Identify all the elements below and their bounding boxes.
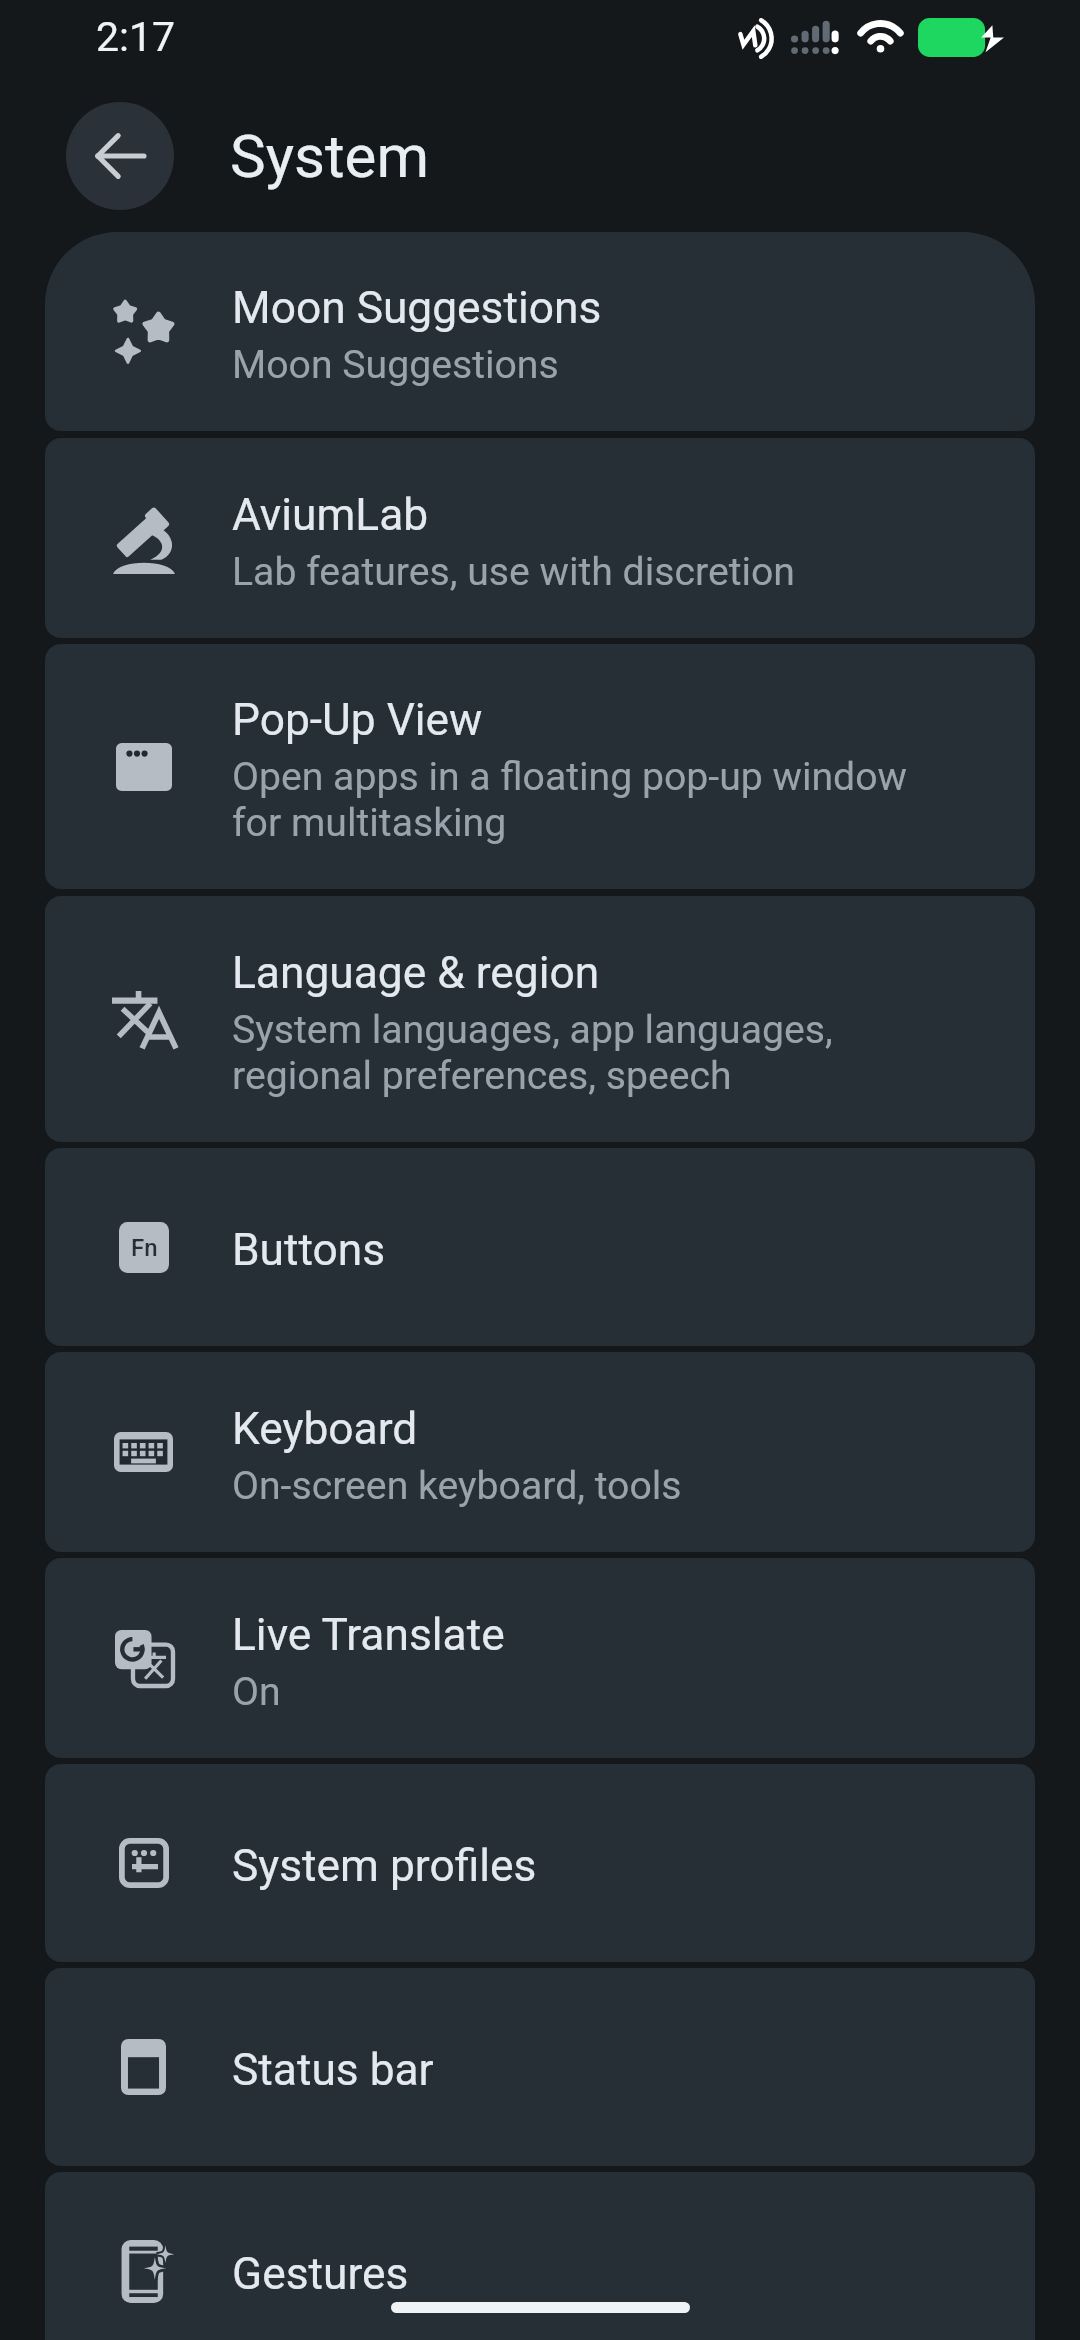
button[interactable]: Back [66, 102, 174, 210]
staticText: Gestures [232, 2248, 409, 2300]
button[interactable]: Status bar [45, 1968, 1035, 2166]
staticText: System languages, app languages, regiona… [232, 1006, 833, 1098]
staticText: AviumLab [232, 489, 429, 541]
staticText: System profiles [232, 1840, 537, 1892]
button[interactable]: AviumLab [45, 438, 1035, 638]
staticText: Lab features, use with discretion [232, 548, 796, 594]
button[interactable]: Keyboard [45, 1352, 1035, 1552]
staticText: Moon Suggestions [232, 282, 602, 334]
staticText: Status bar [232, 2044, 434, 2096]
button[interactable]: Gestures [45, 2172, 1035, 2340]
staticText: Fn [131, 1234, 158, 1262]
staticText: Open apps in a floating pop-up window fo… [232, 753, 907, 845]
button[interactable]: Live Translate [45, 1558, 1035, 1758]
button[interactable]: Pop-Up View [45, 644, 1035, 889]
staticText: System [230, 121, 430, 191]
button[interactable]: Moon Suggestions [45, 232, 1035, 431]
staticText: Live Translate [232, 1609, 505, 1661]
button[interactable]: Language & region [45, 896, 1035, 1142]
staticText: Keyboard [232, 1403, 418, 1455]
button[interactable]: Fn [45, 1148, 1035, 1346]
staticText: Language & region [232, 947, 600, 999]
staticText: Pop-Up View [232, 694, 483, 746]
staticText: On-screen keyboard, tools [232, 1462, 682, 1508]
staticText: Buttons [232, 1224, 386, 1276]
staticText: Moon Suggestions [232, 341, 559, 387]
button[interactable]: System profiles [45, 1764, 1035, 1962]
staticText: 2:17 [96, 13, 176, 61]
staticText: On [232, 1668, 281, 1714]
